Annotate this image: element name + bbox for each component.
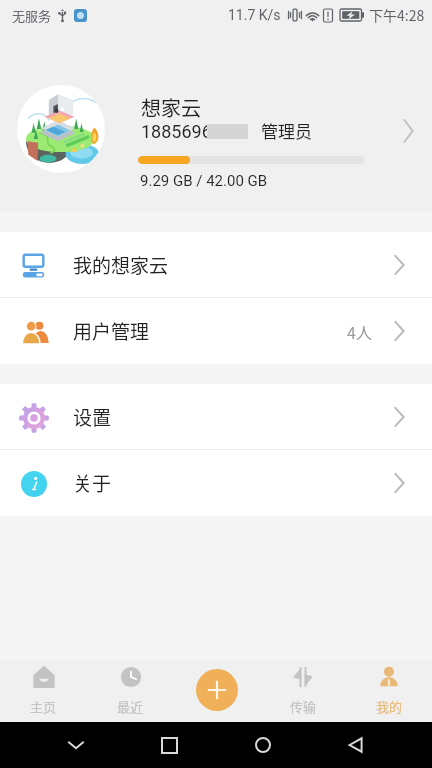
staticText: 传输 <box>290 697 317 716</box>
staticText: 管理员 <box>261 118 312 143</box>
staticText: 最近 <box>117 697 144 716</box>
button[interactable]: 用户管理 <box>0 298 432 364</box>
button[interactable]: Back <box>339 728 373 762</box>
button[interactable]: Add <box>196 669 238 711</box>
button[interactable]: 我的 <box>346 660 432 722</box>
button[interactable]: 设置 <box>0 384 432 450</box>
button[interactable]: 我的想家云 <box>0 232 432 298</box>
button[interactable]: Home <box>246 728 280 762</box>
button[interactable]: 传输 <box>260 660 346 722</box>
button[interactable]: 关于 <box>0 450 432 516</box>
staticText: 4人 <box>347 320 372 343</box>
button[interactable]: 最近 <box>87 660 174 722</box>
staticText: 我的想家云 <box>73 251 169 279</box>
staticText: 用户管理 <box>73 317 150 345</box>
button[interactable]: 想家云 <box>0 30 432 212</box>
staticText: 主页 <box>30 697 57 716</box>
staticText: 设置 <box>73 403 112 431</box>
staticText: 想家云 <box>141 93 201 122</box>
staticText: 我的 <box>376 697 403 716</box>
staticText: 下午4:28 <box>369 5 425 25</box>
staticText: 9.29 GB / 42.00 GB <box>140 172 268 190</box>
staticText: 11.7 K/s <box>228 7 281 23</box>
button[interactable]: Hide keyboard <box>59 728 93 762</box>
staticText: 无服务 <box>12 6 52 25</box>
button[interactable]: 主页 <box>0 660 87 722</box>
staticText: 1885696 <box>141 121 212 142</box>
button[interactable]: Recents <box>152 728 186 762</box>
staticText: 关于 <box>73 469 112 497</box>
